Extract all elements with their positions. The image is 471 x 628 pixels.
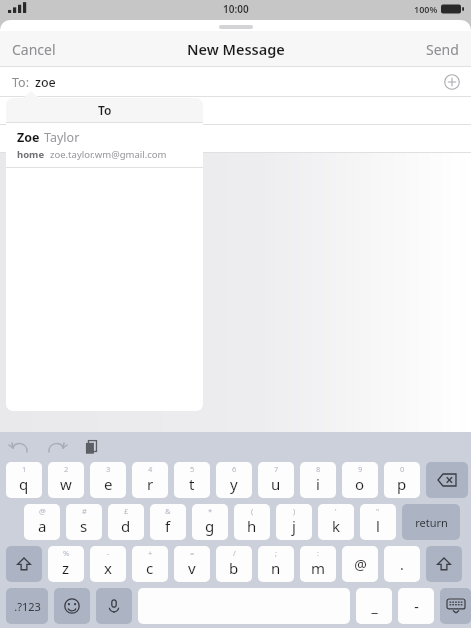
button[interactable]: : bbox=[300, 546, 336, 582]
button[interactable]: 3 bbox=[90, 462, 126, 498]
staticText: 9 bbox=[358, 464, 363, 474]
button[interactable]: - bbox=[90, 546, 126, 582]
button[interactable]: " bbox=[360, 504, 396, 540]
staticText: ) bbox=[293, 506, 296, 516]
staticText: .?123 bbox=[14, 599, 41, 614]
button[interactable]: _ bbox=[356, 588, 392, 624]
button[interactable]: ; bbox=[258, 546, 294, 582]
staticText: * bbox=[208, 506, 213, 516]
button[interactable]: Zoe bbox=[6, 123, 203, 167]
button[interactable]: # bbox=[66, 504, 102, 540]
staticText: & bbox=[165, 506, 171, 516]
staticText: b bbox=[229, 558, 239, 578]
staticText: v bbox=[188, 558, 196, 578]
button[interactable]: % bbox=[48, 546, 84, 582]
staticText: t bbox=[189, 474, 195, 494]
button[interactable]: * bbox=[192, 504, 228, 540]
staticText: @ bbox=[354, 555, 367, 574]
button[interactable]: 8 bbox=[300, 462, 336, 498]
staticText: To bbox=[98, 102, 112, 118]
button[interactable]: / bbox=[216, 546, 252, 582]
staticText: w bbox=[60, 474, 72, 494]
button[interactable]: ’ bbox=[318, 504, 354, 540]
staticText: 10:00 bbox=[223, 2, 249, 16]
button[interactable]: 7 bbox=[258, 462, 294, 498]
staticText: a bbox=[38, 516, 47, 536]
staticText: 5 bbox=[190, 464, 195, 474]
staticText: d bbox=[121, 516, 131, 536]
staticText: " bbox=[376, 506, 380, 516]
button[interactable]: - bbox=[398, 588, 434, 624]
button[interactable]: 6 bbox=[216, 462, 252, 498]
staticText: @ bbox=[39, 506, 46, 516]
button[interactable]: Redo bbox=[46, 437, 66, 457]
staticText: l bbox=[376, 516, 380, 536]
button[interactable]: Add contact bbox=[441, 71, 463, 93]
button[interactable]: emoji bbox=[54, 588, 90, 624]
staticText: _ bbox=[371, 597, 378, 616]
button[interactable]: 1 bbox=[6, 462, 42, 498]
button[interactable]: Paste bbox=[82, 437, 102, 457]
button[interactable]: = bbox=[174, 546, 210, 582]
staticText: e bbox=[104, 474, 113, 494]
button[interactable]: 9 bbox=[342, 462, 378, 498]
staticText: £ bbox=[124, 506, 129, 516]
staticText: c bbox=[146, 558, 154, 578]
staticText: z bbox=[62, 558, 70, 578]
button[interactable]: .?123 bbox=[6, 588, 48, 624]
button[interactable]: & bbox=[150, 504, 186, 540]
button[interactable]: ( bbox=[234, 504, 270, 540]
staticText: 4 bbox=[148, 464, 153, 474]
staticText: y bbox=[230, 474, 238, 494]
button[interactable]: @ bbox=[24, 504, 60, 540]
button[interactable]: shift bbox=[6, 546, 42, 582]
staticText: New Message bbox=[187, 39, 285, 59]
staticText: To: bbox=[12, 74, 29, 91]
staticText: 6 bbox=[232, 464, 237, 474]
staticText: n bbox=[271, 558, 281, 578]
button[interactable]: £ bbox=[108, 504, 144, 540]
button[interactable]: 5 bbox=[174, 462, 210, 498]
staticText: = bbox=[190, 548, 195, 558]
staticText: j bbox=[292, 516, 296, 536]
button[interactable]: . bbox=[384, 546, 420, 582]
button[interactable]: 2 bbox=[48, 462, 84, 498]
staticText: o bbox=[355, 474, 365, 494]
button[interactable]: + bbox=[132, 546, 168, 582]
staticText: home bbox=[17, 148, 45, 161]
staticText: 1 bbox=[22, 464, 27, 474]
staticText: ( bbox=[251, 506, 254, 516]
staticText: 7 bbox=[274, 464, 279, 474]
staticText: - bbox=[414, 597, 419, 616]
staticText: k bbox=[332, 516, 341, 536]
staticText: zoe bbox=[35, 74, 56, 91]
staticText: ’ bbox=[335, 506, 337, 516]
staticText: s bbox=[80, 516, 88, 536]
staticText: u bbox=[271, 474, 281, 494]
button[interactable]: 4 bbox=[132, 462, 168, 498]
button[interactable]: mic bbox=[96, 588, 132, 624]
button[interactable]: Undo bbox=[10, 437, 30, 457]
button[interactable]: @ bbox=[342, 546, 378, 582]
staticText: i bbox=[316, 474, 320, 494]
staticText: zoe.taylor.wm@gmail.com bbox=[50, 148, 167, 161]
button[interactable]: 0 bbox=[384, 462, 420, 498]
button[interactable]: backspace bbox=[426, 462, 468, 498]
button[interactable]: Cancel bbox=[12, 40, 56, 59]
staticText: x bbox=[104, 558, 112, 578]
staticText: : bbox=[317, 548, 320, 558]
staticText: f bbox=[165, 516, 171, 536]
button[interactable]: ) bbox=[276, 504, 312, 540]
staticText: + bbox=[148, 548, 153, 558]
button[interactable]: Send bbox=[426, 40, 459, 59]
button[interactable]: dismiss bbox=[440, 588, 471, 624]
staticText: 2 bbox=[64, 464, 69, 474]
button[interactable]: return bbox=[402, 504, 460, 540]
staticText: 3 bbox=[106, 464, 111, 474]
staticText: g bbox=[205, 516, 215, 536]
button[interactable]: shift bbox=[426, 546, 462, 582]
staticText: m bbox=[311, 558, 326, 578]
staticText: h bbox=[247, 516, 257, 536]
staticText: return bbox=[415, 515, 448, 530]
